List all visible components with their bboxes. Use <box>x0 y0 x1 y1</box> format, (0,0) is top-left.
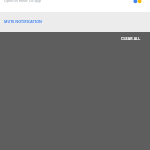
button[interactable]: Open in Wear OS app <box>0 0 150 12</box>
button[interactable]: CLEAR ALL <box>111 34 150 47</box>
other: App icon <box>133 0 145 6</box>
button[interactable]: MUTE NOTIFICATION <box>0 12 46 32</box>
staticText: MUTE NOTIFICATION <box>4 19 42 24</box>
staticText: CLEAR ALL <box>121 36 141 41</box>
staticText: Open in Wear OS app <box>4 0 42 3</box>
